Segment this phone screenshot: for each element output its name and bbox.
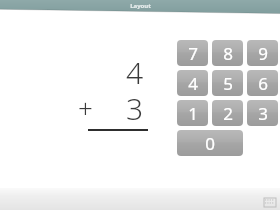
staticText: 5	[223, 72, 233, 95]
staticText: 4	[126, 52, 144, 93]
button[interactable]: 0	[177, 130, 243, 156]
staticText: 0	[205, 132, 215, 155]
button[interactable]: 7	[177, 40, 208, 66]
button[interactable]: 4	[177, 70, 208, 96]
button[interactable]: 8	[212, 40, 243, 66]
button[interactable]: 9	[247, 40, 278, 66]
staticText: 2	[223, 102, 233, 125]
staticText: 3	[126, 88, 144, 129]
staticText: 1	[188, 102, 198, 125]
button[interactable]: 2	[212, 100, 243, 126]
button[interactable]: Keyboard	[264, 198, 276, 207]
staticText: 9	[258, 42, 268, 65]
staticText: 4	[188, 72, 198, 95]
staticText: +	[78, 90, 93, 125]
button[interactable]: 1	[177, 100, 208, 126]
button[interactable]: 5	[212, 70, 243, 96]
button[interactable]: 6	[247, 70, 278, 96]
staticText: 7	[188, 42, 198, 65]
staticText: 8	[223, 42, 233, 65]
button[interactable]: 3	[247, 100, 278, 126]
staticText: 6	[258, 72, 268, 95]
staticText: 3	[258, 102, 268, 125]
staticText: Layout	[130, 2, 151, 10]
